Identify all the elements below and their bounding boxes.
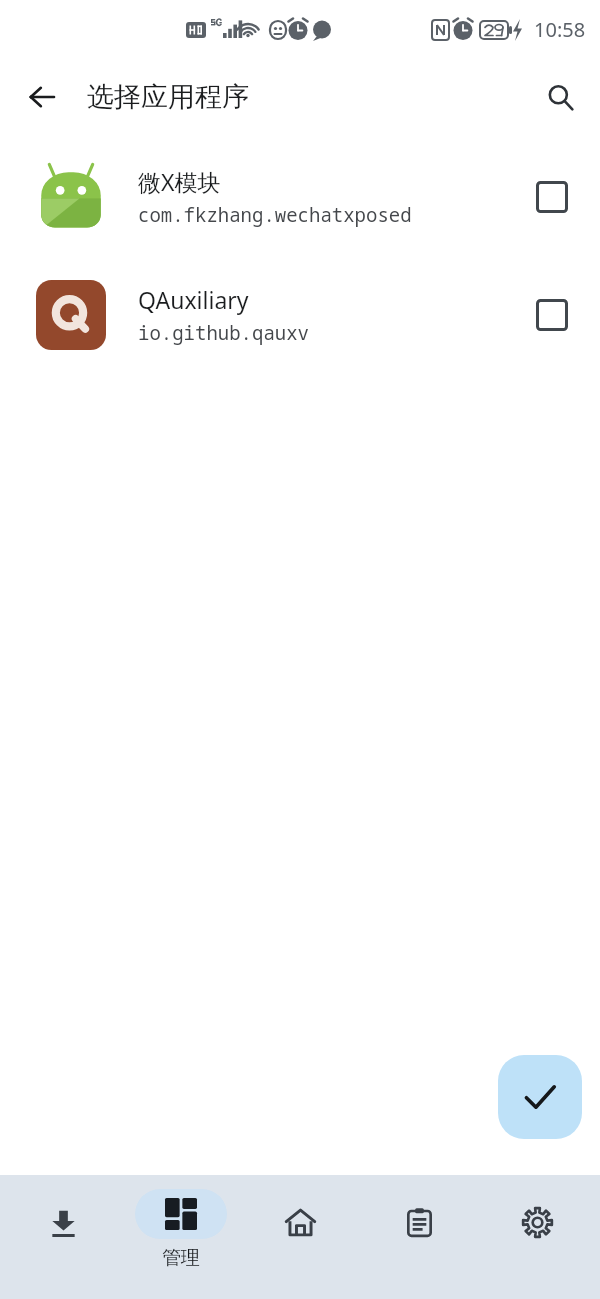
button[interactable]: Select app [528, 173, 576, 221]
button[interactable]: Logs [363, 1175, 475, 1299]
staticText: com.fkzhang.wechatxposed [138, 202, 412, 228]
button[interactable]: Search [536, 73, 584, 121]
button[interactable]: Settings [481, 1175, 593, 1299]
button[interactable]: Confirm [498, 1055, 582, 1139]
button[interactable]: QAuxiliary [0, 268, 600, 362]
staticText: 选择应用程序 [87, 80, 249, 114]
staticText: 10:58 [534, 16, 586, 43]
button[interactable]: Downloads [7, 1175, 119, 1299]
button[interactable]: 微X模块 [0, 150, 600, 244]
staticText: QAuxiliary [138, 284, 249, 315]
staticText: 微X模块 [138, 166, 221, 197]
button[interactable]: Back [18, 73, 66, 121]
button[interactable]: Home [244, 1175, 356, 1299]
button[interactable]: Select app [528, 291, 576, 339]
staticText: io.github.qauxv [138, 320, 310, 346]
button[interactable]: 管理 [125, 1175, 237, 1299]
staticText: 管理 [162, 1246, 200, 1270]
